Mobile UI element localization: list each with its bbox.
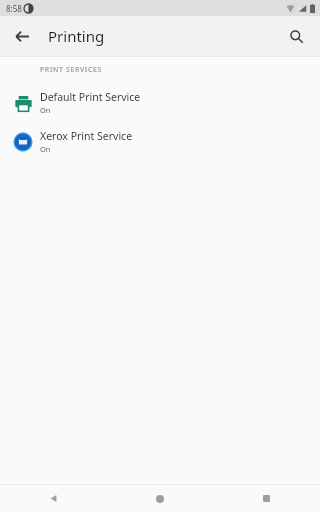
staticText: On <box>40 144 51 154</box>
button[interactable]: Xerox Print Service <box>0 122 320 161</box>
button[interactable]: Home <box>106 485 213 512</box>
button[interactable]: Search <box>278 18 314 54</box>
staticText: On <box>40 105 51 115</box>
staticText: PRINT SERVICES <box>40 65 102 75</box>
button[interactable]: Default Print Service <box>0 83 320 122</box>
staticText: Xerox Print Service <box>40 129 133 143</box>
button[interactable]: Back <box>4 18 40 54</box>
staticText: 8:58 <box>6 3 22 14</box>
staticText: Printing <box>48 26 105 46</box>
staticText: Default Print Service <box>40 90 141 104</box>
button[interactable]: Recent apps <box>213 485 320 512</box>
button[interactable]: Back <box>0 485 106 512</box>
